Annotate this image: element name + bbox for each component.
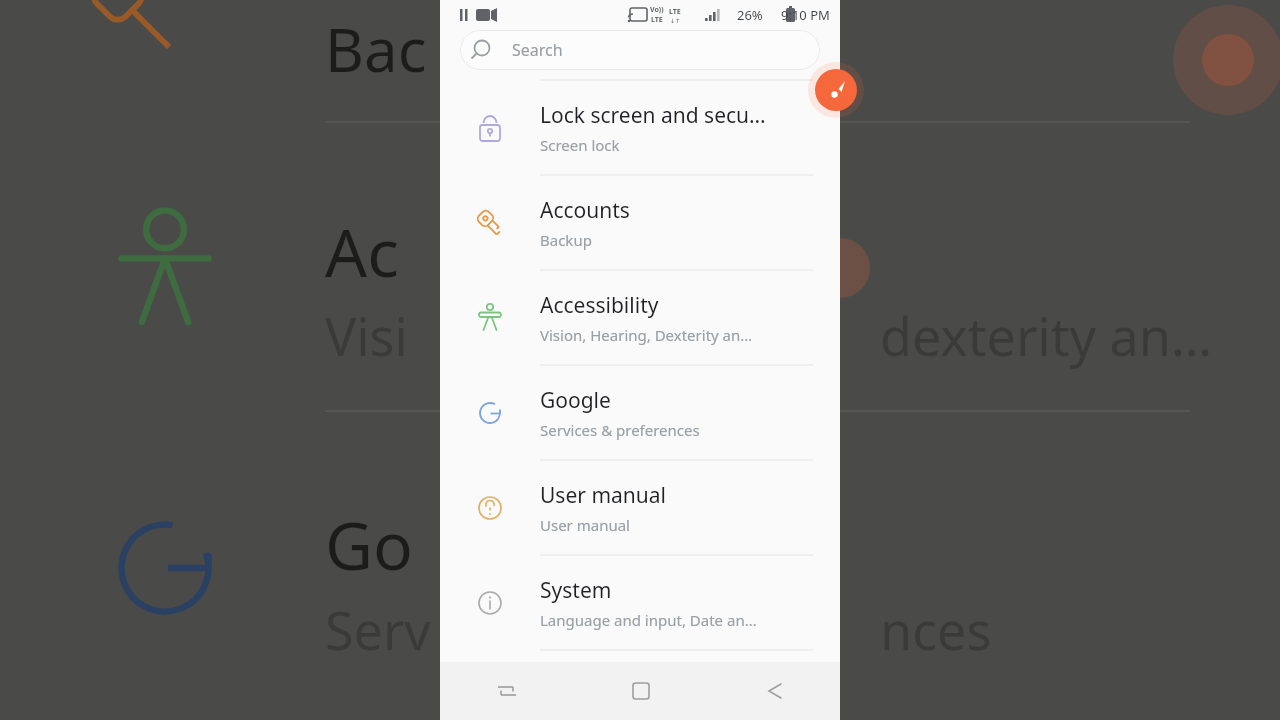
staticText: LTE (669, 7, 681, 17)
staticText: 26% (737, 6, 767, 24)
staticText: Accessibility (540, 291, 659, 320)
button[interactable]: User manual (440, 461, 840, 555)
staticText: Vo)) (650, 5, 664, 15)
staticText: Accounts (540, 196, 630, 225)
staticText: Go (325, 499, 413, 589)
button[interactable]: Edit (808, 62, 864, 118)
button[interactable]: Back (707, 662, 840, 720)
button[interactable]: Google (440, 366, 840, 460)
button[interactable]: Home (574, 662, 707, 720)
button[interactable]: System (440, 556, 840, 650)
staticText: User manual (540, 481, 666, 510)
button[interactable]: Recents (440, 662, 574, 720)
staticText: Visi (325, 300, 408, 371)
staticText: nces (880, 594, 992, 665)
staticText: Ac (325, 206, 399, 296)
staticText: LTE (651, 15, 663, 25)
staticText: Search (512, 39, 563, 61)
staticText: System (540, 576, 612, 605)
staticText: Serv (325, 594, 431, 665)
staticText: Lock screen and secu… (540, 101, 766, 130)
staticText: Language and input, Date an… (540, 610, 757, 630)
staticText: Backup (540, 230, 592, 250)
staticText: Bac (325, 8, 427, 90)
staticText: 9:10 PM (781, 6, 830, 24)
staticText: Services & preferences (540, 420, 700, 440)
staticText: ↓↑ (670, 17, 681, 24)
button[interactable]: Lock screen and secu… (440, 81, 840, 175)
staticText: User manual (540, 515, 630, 535)
button[interactable]: Search (460, 30, 820, 70)
button[interactable]: Accounts (440, 176, 840, 270)
button[interactable]: Accessibility (440, 271, 840, 365)
staticText: dexterity an… (880, 300, 1213, 371)
staticText: Screen lock (540, 135, 620, 155)
staticText: Vision, Hearing, Dexterity an… (540, 325, 753, 345)
staticText: Google (540, 386, 611, 415)
